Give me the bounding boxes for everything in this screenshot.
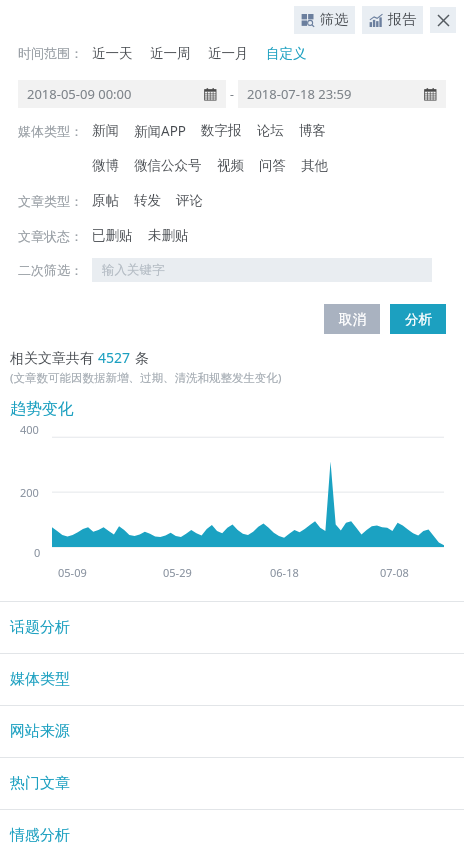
staticText: 近一周 [150,45,191,62]
staticText: 网站来源 [10,722,70,741]
button[interactable]: 媒体类型 [0,654,464,705]
button[interactable]: 其他 [301,157,343,174]
button[interactable]: 2018-05-09 00:00 [18,80,226,108]
staticText: 近一天 [92,45,133,62]
button[interactable]: 输入关键字 [92,258,432,282]
button[interactable]: Close [430,7,456,33]
staticText: 2018-05-09 00:00 [27,85,132,103]
button[interactable]: 未删贴 [148,227,204,244]
staticText: 未删贴 [148,227,189,244]
staticText: 07-08 [380,565,409,580]
staticText: 取消 [339,311,366,328]
staticText: 相关文章共有 [10,348,98,367]
button[interactable]: 情感分析 [0,810,464,861]
button[interactable]: 原帖 [92,192,134,209]
button[interactable]: 论坛 [257,122,299,139]
button[interactable]: 新闻APP [134,122,201,140]
staticText: 视频 [217,157,244,174]
staticText: 趋势变化 [10,399,74,419]
button[interactable]: 新闻 [92,122,134,139]
staticText: 筛选 [320,11,348,29]
staticText: 05-09 [58,565,87,580]
staticText: 其他 [301,157,328,174]
button[interactable]: 取消 [324,304,380,334]
staticText: 近一月 [208,45,249,62]
staticText: 评论 [176,192,203,209]
staticText: 新闻APP [134,122,186,140]
staticText: 条 [131,348,149,367]
button[interactable]: 热门文章 [0,758,464,809]
staticText: 05-29 [163,565,192,580]
button[interactable]: 筛选 [294,6,355,34]
button[interactable]: 2018-07-18 23:59 [238,80,446,108]
staticText: 0 [34,545,41,560]
staticText: 数字报 [201,122,242,139]
staticText: 分析 [405,311,432,328]
staticText: 自定义 [266,45,307,62]
staticText: 热门文章 [10,774,70,793]
button[interactable]: 近一月 [208,45,266,62]
staticText: 时间范围： [18,45,83,61]
staticText: 原帖 [92,192,119,209]
staticText: 400 [20,422,39,437]
button[interactable]: 视频 [217,157,259,174]
staticText: (文章数可能因数据新增、过期、清洗和规整发生变化) [10,370,282,386]
button[interactable]: 网站来源 [0,706,464,757]
staticText: 4527 [98,348,131,367]
button[interactable]: 评论 [176,192,218,209]
staticText: 论坛 [257,122,284,139]
button[interactable]: 报告 [362,6,423,34]
staticText: 输入关键字 [102,262,165,278]
button[interactable]: 近一天 [92,45,150,62]
staticText: 200 [20,485,39,500]
staticText: 情感分析 [10,826,70,845]
staticText: 媒体类型 [10,670,70,689]
staticText: 2018-07-18 23:59 [247,85,352,103]
button[interactable]: 已删贴 [92,227,148,244]
staticText: 媒体类型： [18,123,83,139]
button[interactable]: 转发 [134,192,176,209]
button[interactable]: 微博 [92,157,134,174]
button[interactable]: 微信公众号 [134,157,217,174]
staticText: 转发 [134,192,161,209]
staticText: 微信公众号 [134,157,202,174]
button[interactable]: 数字报 [201,122,257,139]
staticText: 话题分析 [10,618,70,637]
button[interactable]: 博客 [299,122,341,139]
staticText: 文章状态： [18,228,83,244]
staticText: 博客 [299,122,326,139]
staticText: 新闻 [92,122,119,139]
staticText: 06-18 [270,565,299,580]
staticText: 二次筛选： [18,262,83,278]
button[interactable]: 分析 [390,304,446,334]
button[interactable]: 近一周 [150,45,208,62]
button[interactable]: 自定义 [266,45,324,62]
staticText: - [230,86,234,102]
button[interactable]: 话题分析 [0,602,464,653]
staticText: 报告 [388,11,416,29]
staticText: 已删贴 [92,227,133,244]
staticText: 微博 [92,157,119,174]
staticText: 问答 [259,157,286,174]
staticText: 文章类型： [18,193,83,209]
button[interactable]: 问答 [259,157,301,174]
